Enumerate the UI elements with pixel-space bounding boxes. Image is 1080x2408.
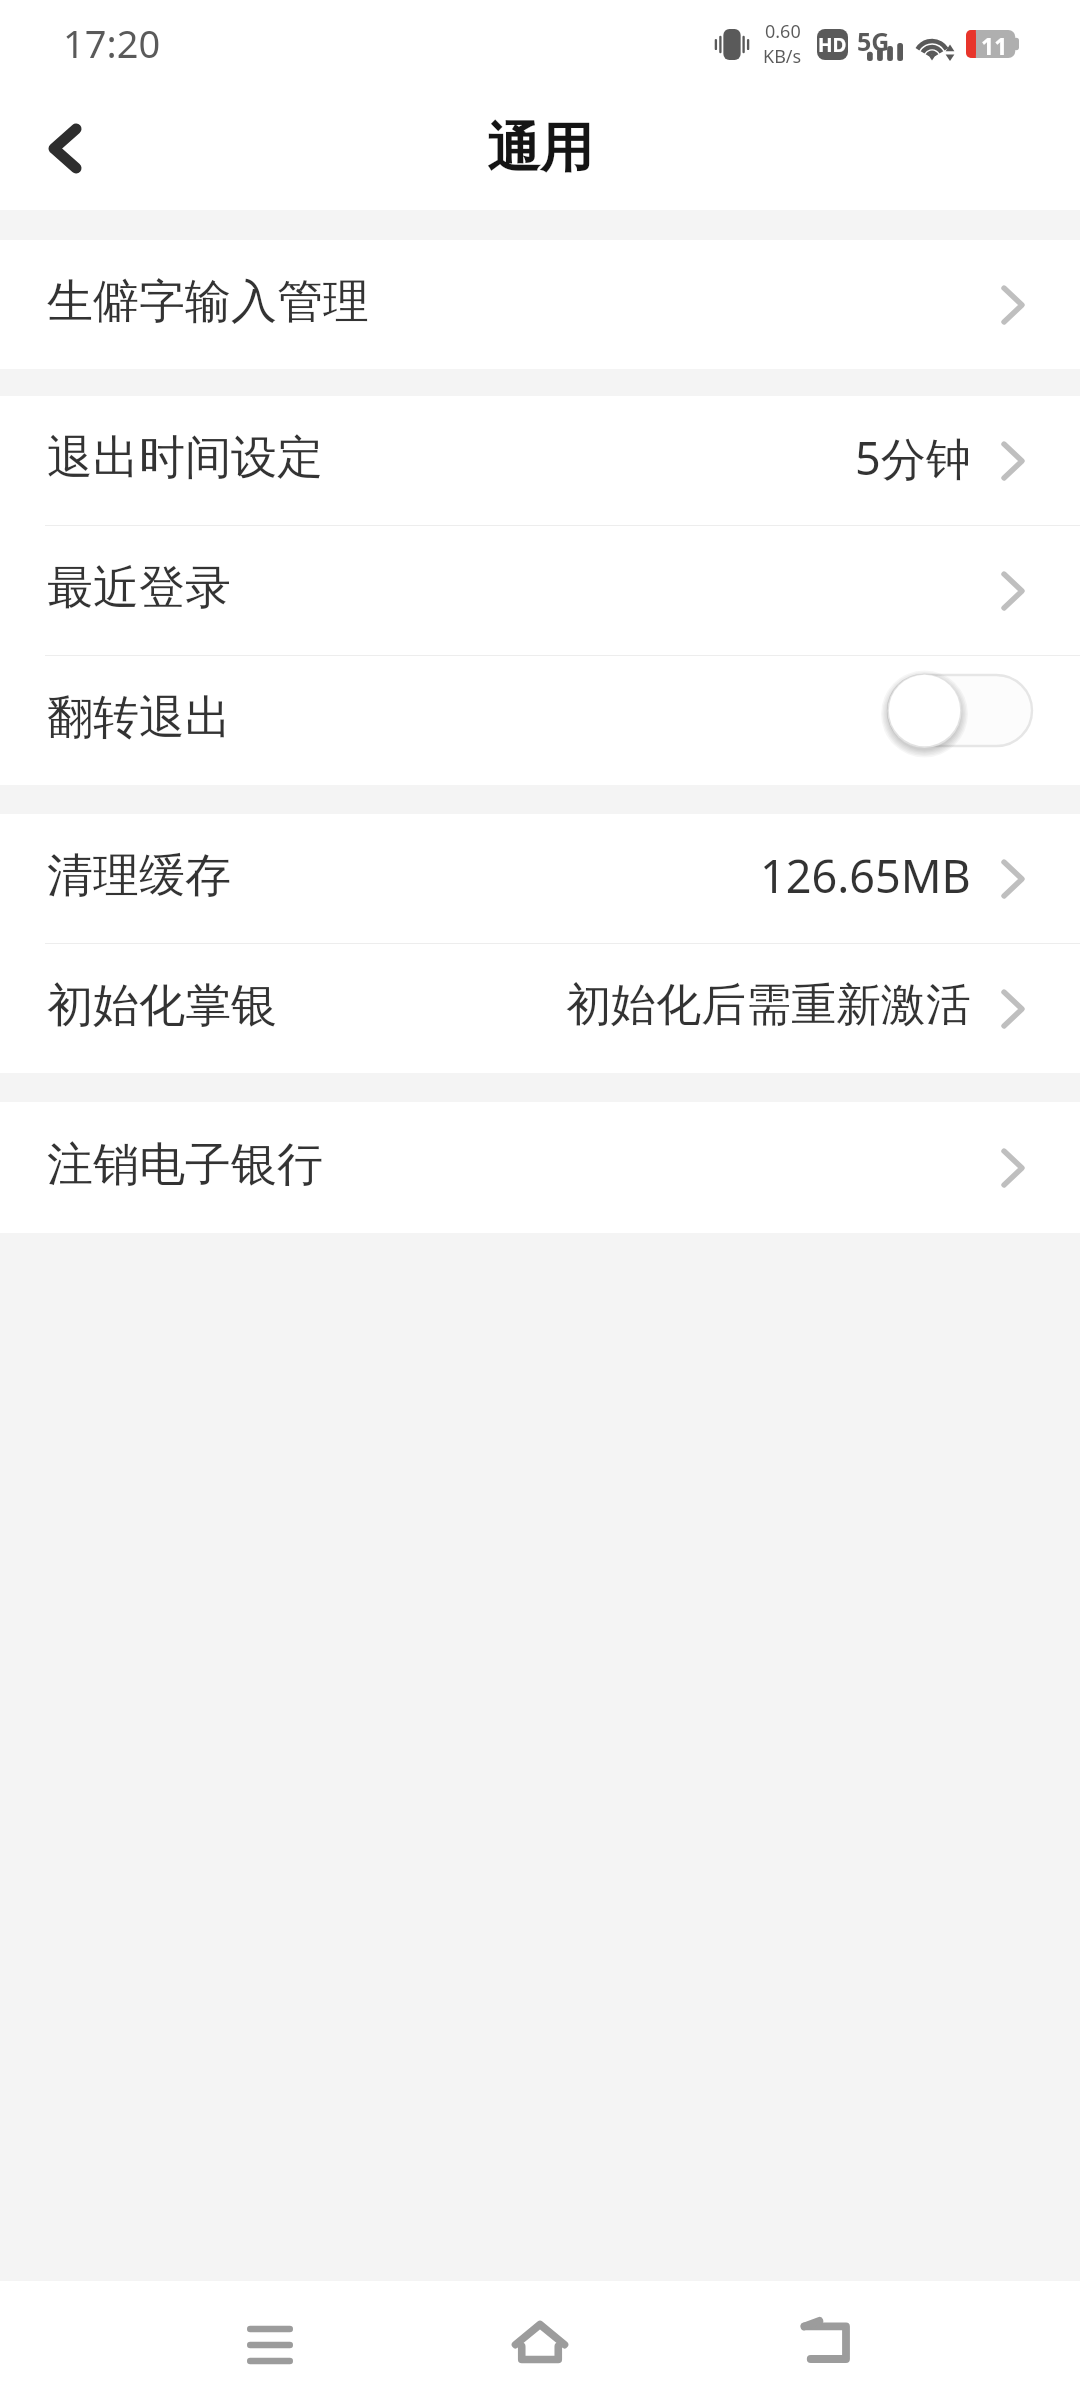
staticText: KB/s bbox=[763, 44, 802, 69]
button[interactable]: 清理缓存 bbox=[0, 814, 1080, 943]
staticText: 初始化掌银 bbox=[47, 977, 277, 1035]
button[interactable]: Home bbox=[470, 2281, 610, 2408]
button[interactable]: 注销电子银行 bbox=[0, 1102, 1080, 1233]
staticText: 0.60 bbox=[765, 19, 801, 44]
staticText: 清理缓存 bbox=[47, 847, 231, 905]
button[interactable]: 最近登录 bbox=[0, 526, 1080, 655]
staticText: 初始化后需重新激活 bbox=[566, 977, 971, 1034]
staticText: 17:20 bbox=[63, 17, 161, 69]
staticText: 生僻字输入管理 bbox=[47, 273, 369, 331]
button[interactable]: 退出时间设定 bbox=[0, 396, 1080, 525]
staticText: 5G bbox=[857, 24, 890, 56]
button[interactable]: 初始化掌银 bbox=[0, 944, 1080, 1073]
button[interactable]: Back bbox=[0, 90, 130, 210]
staticText: 注销电子银行 bbox=[47, 1136, 323, 1194]
button[interactable]: 翻转退出 bbox=[0, 656, 1080, 785]
staticText: HD bbox=[818, 32, 847, 58]
staticText: 11 bbox=[981, 30, 1008, 58]
button[interactable]: Toggle flip to exit bbox=[887, 674, 1033, 762]
staticText: 退出时间设定 bbox=[47, 429, 323, 487]
staticText: 126.65MB bbox=[760, 845, 971, 906]
staticText: 翻转退出 bbox=[47, 689, 231, 747]
button[interactable]: Back bbox=[755, 2281, 895, 2408]
staticText: 最近登录 bbox=[47, 559, 231, 617]
button[interactable]: Recent apps bbox=[200, 2281, 340, 2408]
staticText: 5分钟 bbox=[855, 427, 971, 488]
staticText: 通用 bbox=[487, 115, 593, 182]
button[interactable]: 生僻字输入管理 bbox=[0, 240, 1080, 369]
